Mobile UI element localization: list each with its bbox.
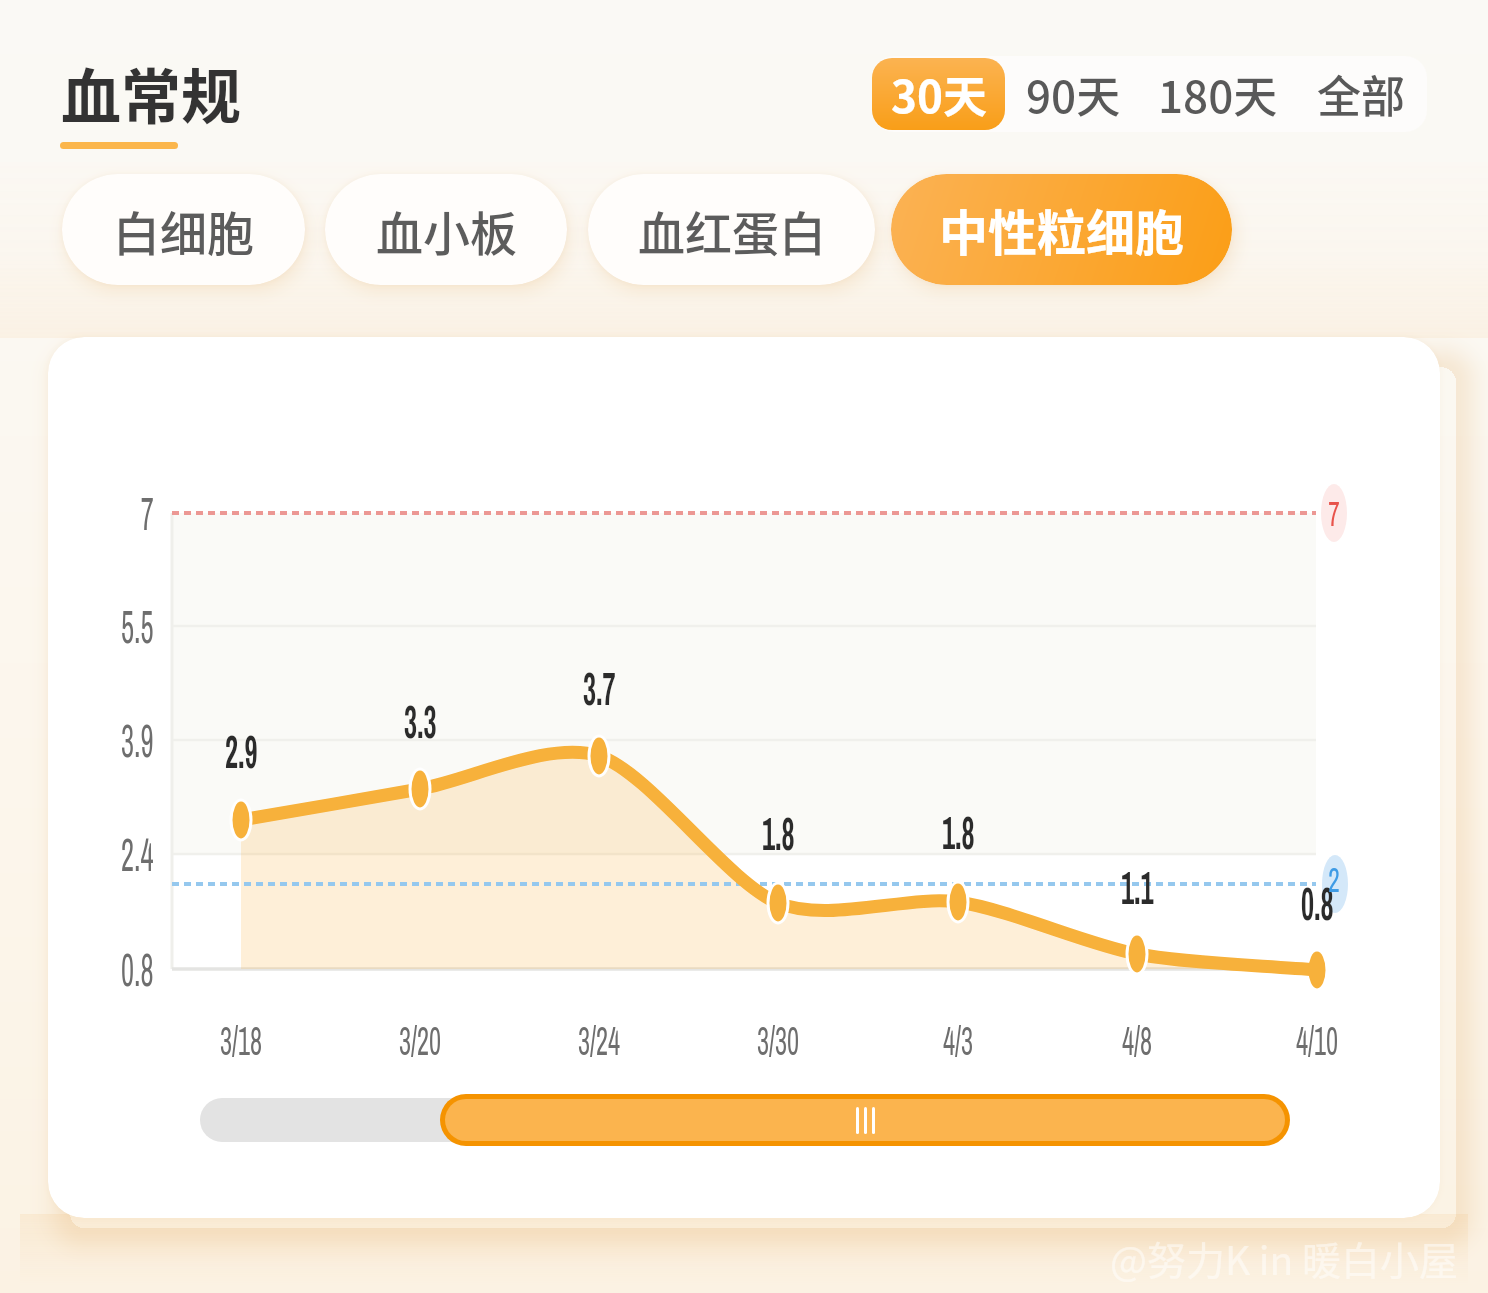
staticText: @努力K in 暖白小屋 xyxy=(1110,1230,1459,1286)
button[interactable]: 90天 xyxy=(1005,56,1141,132)
button[interactable]: 180天 xyxy=(1141,56,1295,132)
staticText: 3/24 xyxy=(578,1014,620,1068)
staticText: 90天 xyxy=(1026,62,1121,126)
staticText: 180天 xyxy=(1158,62,1278,126)
staticText: 1.8 xyxy=(942,801,975,863)
staticText: 0.8 xyxy=(1301,872,1334,934)
staticText: 4/10 xyxy=(1296,1014,1338,1068)
staticText: 1.8 xyxy=(762,802,795,864)
staticText: 白细胞 xyxy=(113,196,254,264)
button[interactable]: 白细胞 xyxy=(62,174,305,285)
staticText: 3/30 xyxy=(757,1014,799,1068)
staticText: 30天 xyxy=(891,62,987,126)
staticText: 4/8 xyxy=(1122,1014,1152,1068)
staticText: 1.1 xyxy=(1121,856,1154,918)
button[interactable]: 血小板 xyxy=(325,174,567,285)
staticText: 5.5 xyxy=(121,595,154,657)
staticText: 3.9 xyxy=(121,709,154,771)
button[interactable]: 中性粒细胞 xyxy=(891,174,1232,285)
staticText: 2 xyxy=(1328,856,1340,903)
staticText: 中性粒细胞 xyxy=(939,194,1185,265)
staticText: 2.4 xyxy=(121,823,154,885)
button[interactable]: 全部 xyxy=(1295,56,1427,132)
staticText: 3/20 xyxy=(399,1014,441,1068)
staticText: 血小板 xyxy=(376,196,517,264)
staticText: 7 xyxy=(141,482,154,544)
staticText: 全部 xyxy=(1317,62,1405,126)
staticText: 3.7 xyxy=(583,657,616,719)
staticText: 3/18 xyxy=(220,1014,262,1068)
staticText: 血红蛋白 xyxy=(638,196,826,264)
staticText: 4/3 xyxy=(943,1014,973,1068)
button[interactable]: 血红蛋白 xyxy=(588,174,875,285)
staticText: 3.3 xyxy=(404,690,437,752)
button[interactable]: 30天 xyxy=(872,58,1005,130)
staticText: 7 xyxy=(1328,490,1340,537)
button[interactable] xyxy=(445,1099,1285,1141)
staticText: 0.8 xyxy=(121,938,154,1000)
staticText: 2.9 xyxy=(225,720,258,782)
staticText: 血常规 xyxy=(61,49,241,136)
